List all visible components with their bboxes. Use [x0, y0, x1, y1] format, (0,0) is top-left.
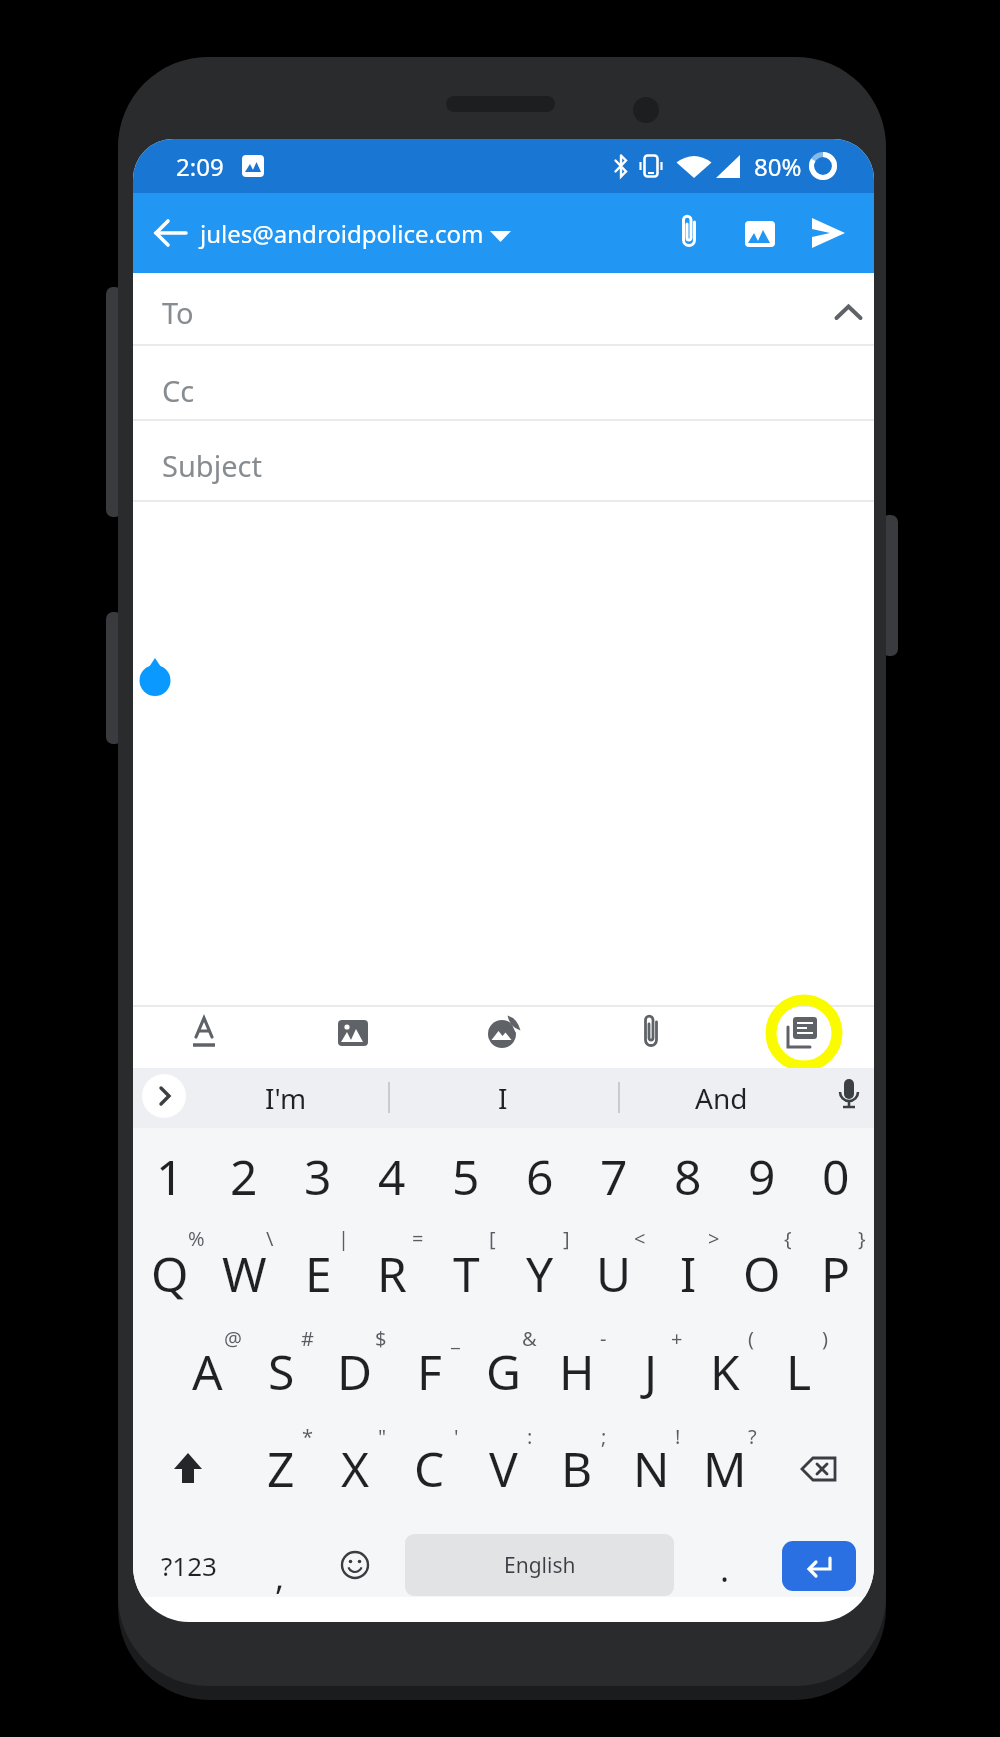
staticText: .	[720, 1546, 730, 1592]
staticText: V	[489, 1436, 518, 1501]
staticText: 4	[378, 1144, 406, 1209]
staticText: P	[821, 1241, 851, 1306]
button[interactable]: 1	[133, 1128, 207, 1224]
button[interactable]: Z	[244, 1420, 318, 1517]
button[interactable]: ?123	[133, 1525, 244, 1605]
button[interactable]: D	[318, 1322, 392, 1420]
staticText: %	[188, 1225, 205, 1252]
staticText: X	[341, 1436, 370, 1501]
button[interactable]	[133, 502, 874, 1005]
staticText: {	[784, 1225, 792, 1252]
button[interactable]: O	[725, 1224, 799, 1322]
staticText: -	[600, 1325, 607, 1352]
button[interactable]: I	[423, 1068, 583, 1128]
button[interactable]: 3	[281, 1128, 355, 1224]
button[interactable]	[475, 1005, 531, 1061]
button[interactable]: K	[688, 1322, 762, 1420]
button[interactable]	[133, 273, 874, 344]
staticText: M	[703, 1436, 747, 1501]
button[interactable]: H	[540, 1322, 614, 1420]
button[interactable]: 5	[429, 1128, 503, 1224]
button[interactable]: 2	[207, 1128, 281, 1224]
staticText: I	[498, 1079, 508, 1117]
staticText: }	[858, 1225, 866, 1252]
staticText: 7	[600, 1144, 628, 1209]
staticText: A	[192, 1339, 223, 1404]
button[interactable]: P	[799, 1224, 873, 1322]
button[interactable]: 7	[577, 1128, 651, 1224]
button[interactable]	[623, 1005, 679, 1061]
staticText: @	[224, 1325, 242, 1352]
button[interactable]: X	[318, 1420, 392, 1517]
button[interactable]: Q	[133, 1224, 207, 1322]
staticText: 6	[526, 1144, 554, 1209]
button[interactable]: And	[641, 1068, 801, 1128]
button[interactable]: F	[392, 1322, 466, 1420]
staticText: O	[743, 1241, 781, 1306]
staticText: I	[680, 1241, 697, 1306]
button[interactable]	[176, 1005, 232, 1061]
button[interactable]: 6	[503, 1128, 577, 1224]
button[interactable]: L	[762, 1322, 836, 1420]
button[interactable]: 4	[355, 1128, 429, 1224]
button[interactable]: 8	[651, 1128, 725, 1224]
button[interactable]: V	[466, 1420, 540, 1517]
button[interactable]: R	[355, 1224, 429, 1322]
button[interactable]: I	[651, 1224, 725, 1322]
button[interactable]: J	[614, 1322, 688, 1420]
staticText: J	[644, 1339, 658, 1404]
button[interactable]	[661, 205, 717, 261]
staticText: )	[822, 1325, 828, 1352]
button[interactable]	[782, 1541, 856, 1591]
button[interactable]	[788, 1439, 848, 1499]
staticText: 80%	[754, 150, 802, 183]
button[interactable]: English	[405, 1534, 674, 1596]
button[interactable]: U	[577, 1224, 651, 1322]
button[interactable]: C	[392, 1420, 466, 1517]
button[interactable]	[133, 346, 874, 419]
staticText: (	[748, 1325, 754, 1352]
button[interactable]: A	[170, 1322, 244, 1420]
staticText: Y	[526, 1241, 554, 1306]
button[interactable]: 0	[799, 1128, 873, 1224]
button[interactable]	[193, 201, 523, 265]
button[interactable]: N	[614, 1420, 688, 1517]
button[interactable]: I'm	[206, 1068, 366, 1128]
button[interactable]: Y	[503, 1224, 577, 1322]
staticText: ?123	[161, 1548, 217, 1583]
button[interactable]: G	[466, 1322, 540, 1420]
button[interactable]	[142, 1074, 186, 1118]
button[interactable]: B	[540, 1420, 614, 1517]
staticText: To	[162, 293, 194, 332]
button[interactable]: 9	[725, 1128, 799, 1224]
staticText: C	[414, 1436, 445, 1501]
staticText: B	[561, 1436, 593, 1501]
staticText: *	[302, 1423, 314, 1450]
staticText: H	[559, 1339, 595, 1404]
button[interactable]: E	[281, 1224, 355, 1322]
button[interactable]	[732, 205, 788, 261]
button[interactable]: M	[688, 1420, 762, 1517]
staticText: 1	[156, 1144, 184, 1209]
staticText: 2:09	[176, 150, 224, 183]
button[interactable]	[325, 1005, 381, 1061]
button[interactable]	[143, 205, 199, 261]
button[interactable]	[774, 1005, 830, 1061]
button[interactable]: T	[429, 1224, 503, 1322]
button[interactable]	[823, 1069, 874, 1121]
button[interactable]: W	[207, 1224, 281, 1322]
staticText: Subject	[162, 446, 262, 485]
button[interactable]	[800, 205, 856, 261]
staticText: 2	[230, 1144, 258, 1209]
button[interactable]	[133, 421, 874, 500]
staticText: 8	[674, 1144, 702, 1209]
staticText: !	[675, 1423, 681, 1450]
staticText: 5	[452, 1144, 480, 1209]
button[interactable]	[327, 1537, 383, 1593]
staticText: 0	[822, 1144, 850, 1209]
staticText: 3	[304, 1144, 332, 1209]
button[interactable]	[158, 1439, 218, 1499]
staticText: K	[710, 1339, 740, 1404]
button[interactable]: S	[244, 1322, 318, 1420]
staticText: I'm	[265, 1079, 307, 1117]
